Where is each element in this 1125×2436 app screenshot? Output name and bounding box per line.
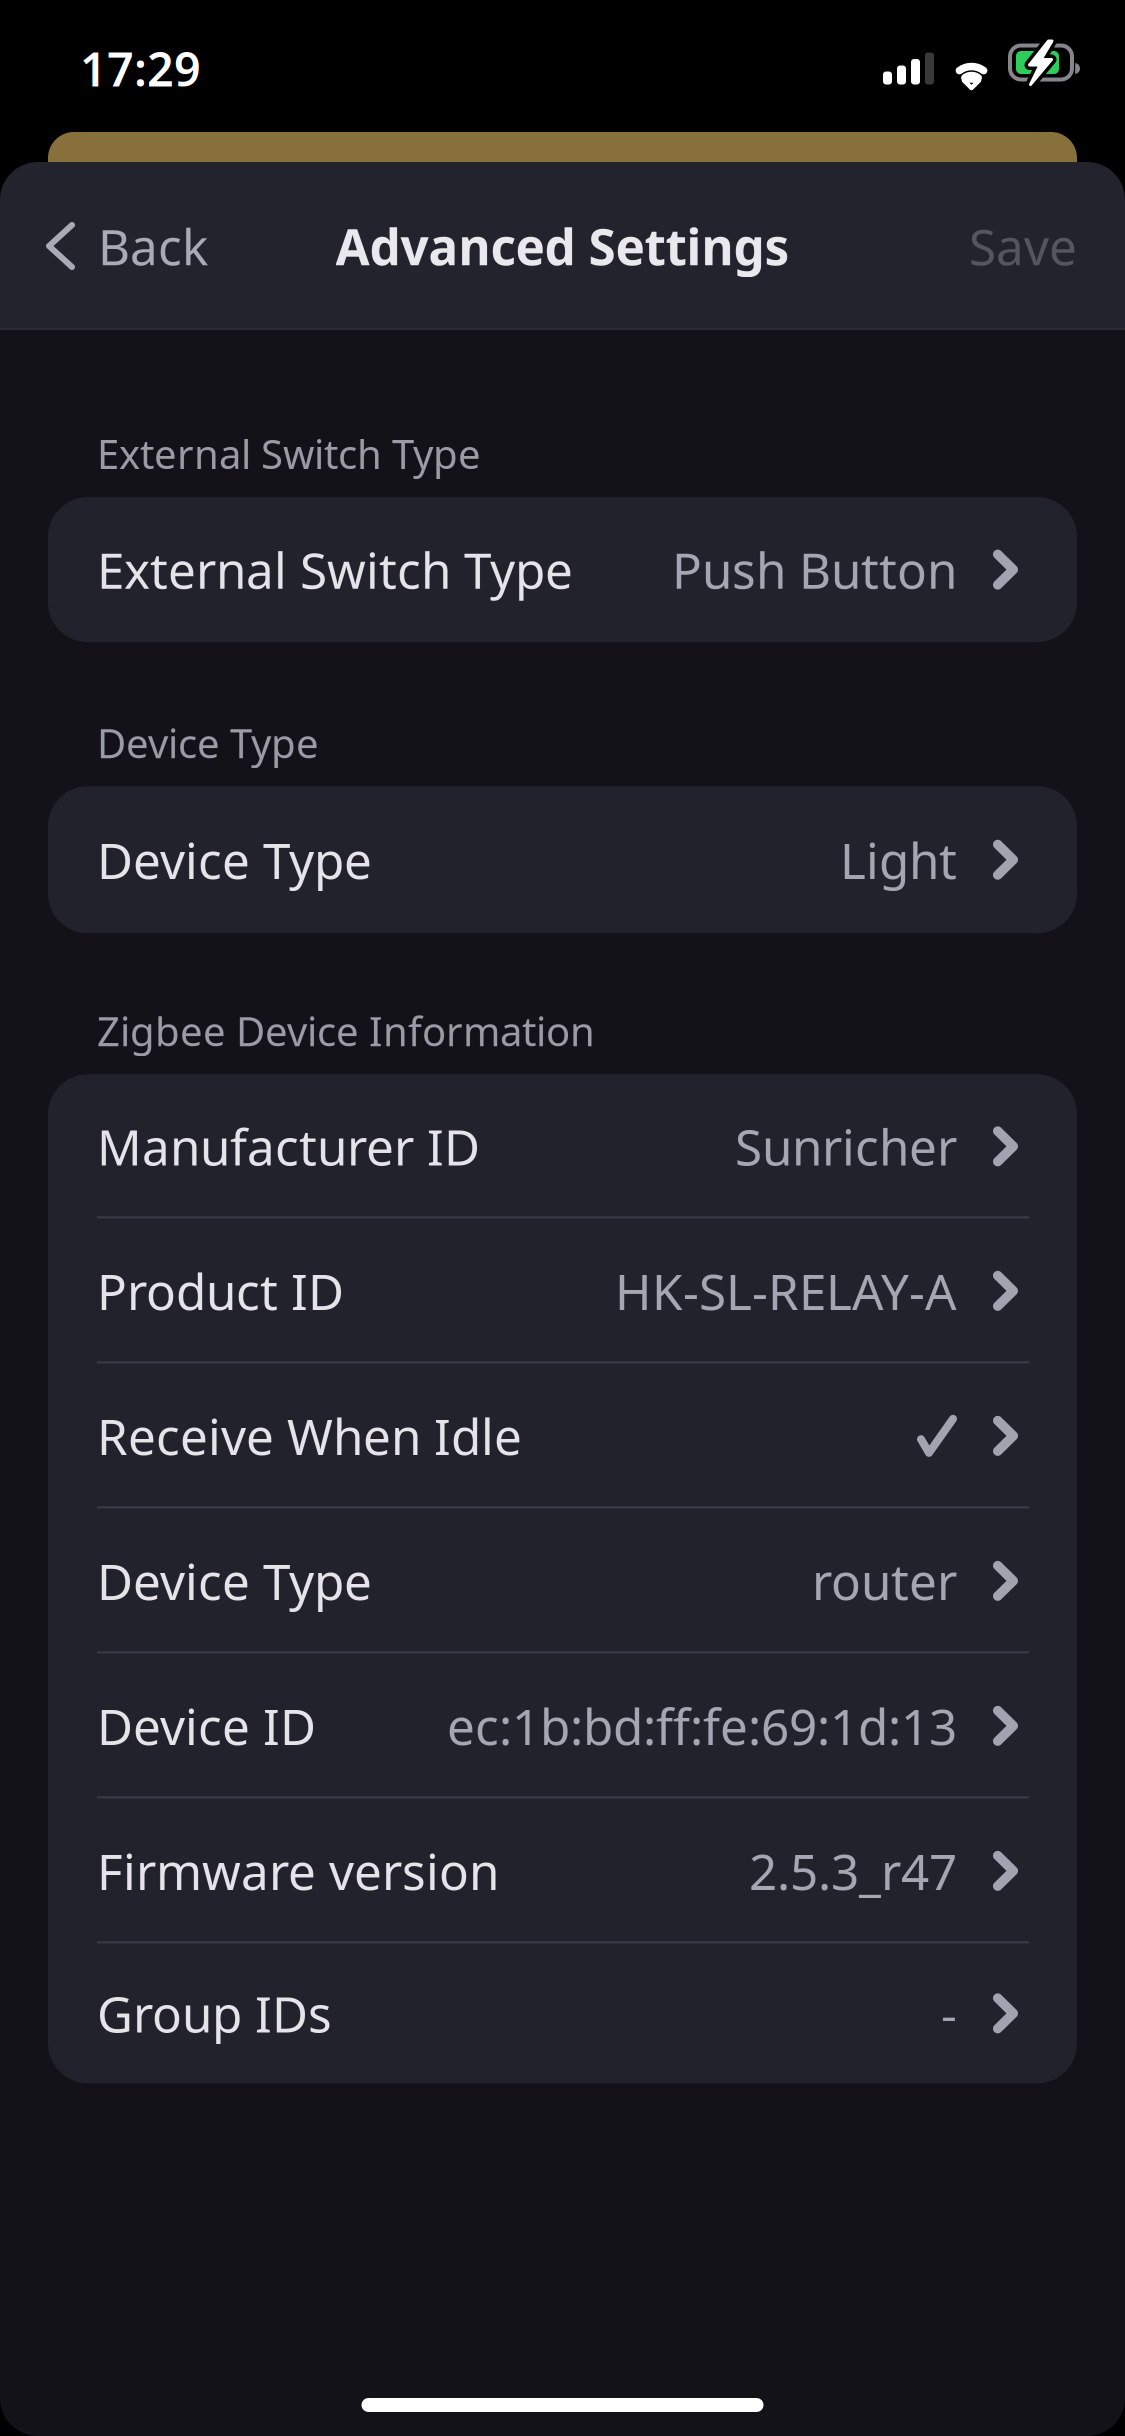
staticText: Receive When Idle <box>97 1403 522 1469</box>
staticText: Group IDs <box>97 1981 332 2046</box>
staticText: Device Type <box>97 716 319 769</box>
staticText: Advanced Settings <box>335 213 789 279</box>
staticText: Save <box>969 213 1077 279</box>
staticText: HK-SL-RELAY-A <box>615 1258 957 1324</box>
staticText: Push Button <box>672 537 957 602</box>
staticText: Device ID <box>97 1693 316 1759</box>
staticText: External Switch Type <box>97 427 481 480</box>
staticText: Product ID <box>97 1258 344 1324</box>
button[interactable]: Save <box>921 162 1125 330</box>
staticText: 2.5.3_r47 <box>749 1838 957 1904</box>
staticText: 17:29 <box>80 37 201 99</box>
button[interactable]: Back <box>0 162 244 330</box>
staticText: Sunricher <box>735 1114 957 1179</box>
button[interactable]: Receive When Idle <box>48 1363 1077 1508</box>
button[interactable]: Device Type <box>48 1508 1077 1653</box>
staticText: ec:1b:bd:ff:fe:69:1d:13 <box>447 1693 957 1759</box>
staticText: Zigbee Device Information <box>97 1004 595 1057</box>
staticText: - <box>941 1981 957 2046</box>
staticText: External Switch Type <box>97 537 573 602</box>
button[interactable]: Device Type <box>48 786 1077 933</box>
button[interactable]: Firmware version <box>48 1798 1077 1943</box>
staticText: Manufacturer ID <box>97 1114 480 1179</box>
staticText: Firmware version <box>97 1838 499 1904</box>
button[interactable]: Manufacturer ID <box>48 1074 1077 1218</box>
button[interactable]: Device ID <box>48 1653 1077 1798</box>
button[interactable]: Group IDs <box>48 1943 1077 2083</box>
staticText: Back <box>98 213 208 279</box>
staticText: Light <box>840 827 957 892</box>
staticText: router <box>812 1548 957 1614</box>
button[interactable]: Product ID <box>48 1218 1077 1363</box>
button[interactable]: External Switch Type <box>48 497 1077 642</box>
staticText: Device Type <box>97 1548 372 1614</box>
staticText: Device Type <box>97 827 372 892</box>
